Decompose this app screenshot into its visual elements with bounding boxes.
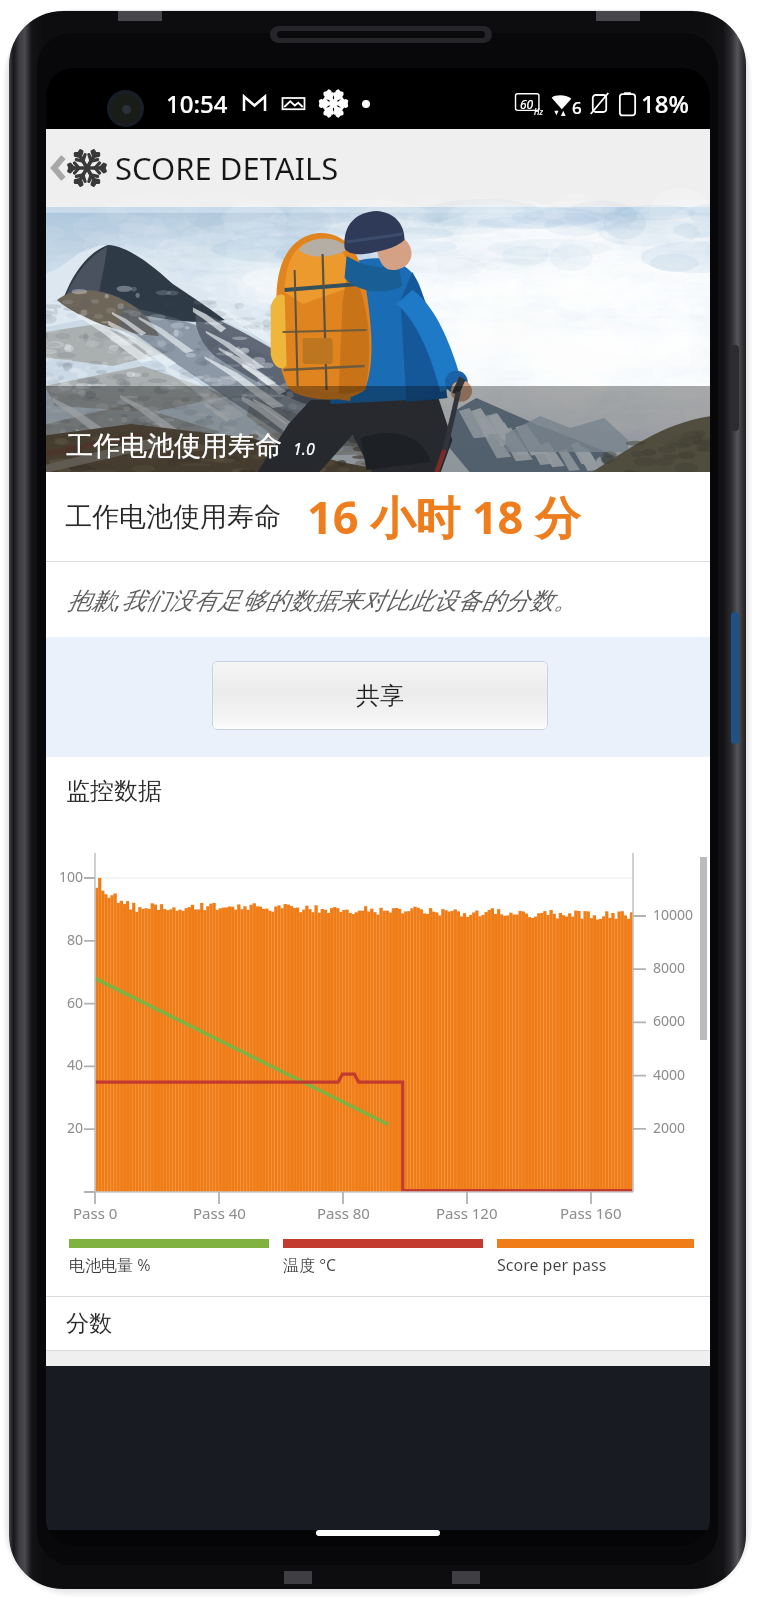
staticText: 电池电量 %: [69, 1254, 151, 1276]
staticText: 2000: [653, 1118, 686, 1137]
staticText: 温度 °C: [283, 1254, 337, 1276]
staticText: 6000: [653, 1011, 686, 1030]
staticText: 8000: [653, 958, 686, 977]
staticText: 100: [59, 867, 84, 886]
staticText: 40: [67, 1055, 84, 1074]
staticText: 16 小时 18 分: [307, 486, 581, 547]
staticText: Pass 160: [560, 1203, 622, 1223]
staticText: Pass 80: [317, 1203, 370, 1223]
staticText: 分数: [66, 1309, 112, 1338]
staticText: 10000: [653, 905, 694, 924]
staticText: Hz: [534, 106, 543, 117]
staticText: 60: [520, 96, 534, 112]
staticText: 80: [67, 930, 84, 949]
staticText: 20: [67, 1118, 84, 1137]
staticText: 共享: [356, 681, 404, 711]
staticText: Score per pass: [497, 1254, 607, 1276]
button[interactable]: 共享: [212, 661, 548, 730]
staticText: 6: [572, 96, 582, 119]
staticText: 1.0: [293, 438, 315, 460]
staticText: 60: [67, 993, 84, 1012]
staticText: Pass 120: [436, 1203, 498, 1223]
staticText: 18%: [641, 87, 689, 120]
staticText: Pass 0: [73, 1203, 118, 1223]
staticText: 4000: [653, 1065, 686, 1084]
staticText: SCORE DETAILS: [115, 147, 339, 189]
staticText: 抱歉,我们没有足够的数据来对比此设备的分数。: [67, 583, 578, 616]
staticText: 工作电池使用寿命: [66, 429, 282, 463]
button[interactable]: Back: [46, 129, 710, 207]
staticText: Pass 40: [193, 1203, 246, 1223]
staticText: 监控数据: [66, 776, 162, 806]
staticText: 10:54: [166, 87, 228, 120]
staticText: 工作电池使用寿命: [65, 500, 281, 534]
other: Back: [52, 155, 65, 181]
